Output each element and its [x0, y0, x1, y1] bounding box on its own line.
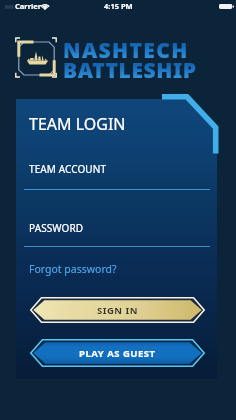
staticText: TEAM ACCOUNT	[29, 162, 107, 176]
staticText: 4:15 PM	[104, 1, 133, 11]
staticText: SIGN IN	[97, 304, 138, 317]
button[interactable]: SIGN IN	[30, 297, 205, 323]
staticText: NASHTECH	[63, 36, 189, 65]
button[interactable]: Forgot password?	[29, 262, 117, 276]
other: NashTech Battleship logo	[15, 37, 57, 78]
button[interactable]: PLAY AS GUEST	[30, 339, 205, 367]
staticText: PLAY AS GUEST	[79, 347, 156, 360]
staticText: PASSWORD	[29, 221, 84, 235]
staticText: TEAM LOGIN	[29, 113, 126, 135]
staticText: Carrier	[15, 1, 42, 11]
staticText: BATTLESHIP	[63, 56, 197, 85]
